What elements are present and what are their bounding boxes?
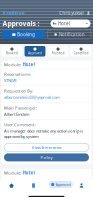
button[interactable]: Policy	[4, 153, 89, 161]
staticText: Hotel	[22, 170, 34, 176]
staticText: Policy	[40, 154, 52, 160]
staticText: Rejected	[51, 51, 64, 55]
staticText: Module:	[4, 170, 21, 176]
staticText: Reservations:	[4, 71, 31, 77]
staticText: As manager does not take any action so t…	[4, 128, 83, 139]
button[interactable]: Hotel	[50, 19, 90, 27]
staticText: Hotel	[58, 20, 70, 27]
staticText: Kre8tive	[2, 9, 24, 17]
button[interactable]: Notification	[48, 30, 91, 39]
staticText: View Itineraries	[31, 144, 61, 150]
button[interactable]: Rejected	[48, 46, 68, 56]
staticText: Requested By:	[4, 88, 33, 94]
staticText: Approvals :	[2, 19, 39, 28]
staticText: Module:	[4, 62, 21, 67]
button[interactable]: Cancelled	[71, 46, 92, 56]
staticText: User Comment:	[4, 122, 36, 127]
button[interactable]: Profile	[70, 180, 92, 191]
staticText: albert.einstein.02@yopmail.com	[4, 95, 60, 100]
button[interactable]: Home	[0, 180, 22, 191]
staticText: Hotel	[22, 62, 34, 67]
staticText: Chris yuksel	[59, 10, 84, 16]
staticText: Booked	[6, 51, 18, 55]
staticText: Cancelled	[74, 51, 89, 55]
button[interactable]: Bookings	[22, 180, 44, 191]
staticText: Booking	[17, 31, 35, 38]
button[interactable]: Booked	[1, 46, 22, 56]
staticText: Notification	[59, 31, 85, 38]
button[interactable]: View Itineraries	[4, 143, 89, 151]
staticText: Approved	[28, 51, 42, 55]
button[interactable]: Approved	[25, 46, 45, 56]
staticText: Albert Einstein	[4, 111, 29, 117]
staticText: Main Passenger:	[4, 105, 37, 111]
staticText: Approved	[55, 182, 70, 187]
staticText: STNJVR	[4, 78, 16, 83]
button[interactable]: Booking	[2, 30, 45, 39]
